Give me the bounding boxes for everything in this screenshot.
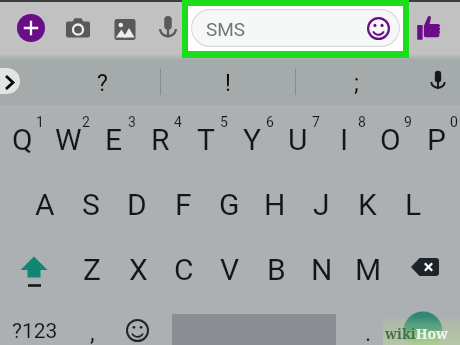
button[interactable]: ! <box>203 64 253 102</box>
staticText: 9 <box>404 114 412 130</box>
staticText: M <box>355 252 382 287</box>
button[interactable]: H <box>252 179 298 229</box>
button[interactable]: I <box>321 114 367 164</box>
button[interactable]: Voice message <box>154 14 182 42</box>
staticText: ?123 <box>12 319 58 344</box>
staticText: F <box>175 187 192 222</box>
staticText: 0 <box>450 114 458 130</box>
staticText: ! <box>225 70 231 97</box>
staticText: SMS <box>206 18 246 40</box>
staticText: 3 <box>128 114 136 130</box>
staticText: P <box>427 122 446 157</box>
button[interactable]: Camera <box>64 14 92 42</box>
button[interactable]: Shift <box>12 250 56 294</box>
button[interactable]: Q <box>0 114 45 164</box>
button[interactable]: ? <box>77 64 127 102</box>
button[interactable]: More suggestions <box>0 68 20 94</box>
button[interactable]: J <box>298 179 344 229</box>
button[interactable]: C <box>161 244 207 294</box>
button[interactable]: U <box>275 114 321 164</box>
button[interactable]: N <box>299 244 345 294</box>
button[interactable]: Send thumbs up <box>417 15 442 40</box>
staticText: U <box>288 122 308 157</box>
staticText: V <box>220 252 240 287</box>
staticText: O <box>380 122 401 157</box>
button[interactable]: P <box>413 114 459 164</box>
staticText: H <box>264 187 286 222</box>
button[interactable]: V <box>207 244 253 294</box>
staticText: N <box>311 252 333 287</box>
button[interactable]: R <box>137 114 183 164</box>
staticText: 1 <box>36 114 44 130</box>
staticText: K <box>358 187 377 222</box>
button[interactable]: Y <box>229 114 275 164</box>
staticText: , <box>90 319 95 345</box>
staticText: 2 <box>82 114 90 130</box>
staticText: X <box>129 252 148 287</box>
staticText: D <box>127 187 147 222</box>
staticText: 6 <box>266 114 274 130</box>
button[interactable]: Emoji keyboard <box>126 319 149 342</box>
button[interactable]: SMS <box>191 9 400 47</box>
button[interactable]: X <box>115 244 161 294</box>
staticText: R <box>151 122 170 157</box>
staticText: ? <box>97 70 108 97</box>
staticText: W <box>55 122 82 157</box>
button[interactable]: Emoji <box>367 17 390 40</box>
staticText: Q <box>12 122 33 157</box>
staticText: Z <box>83 252 101 287</box>
staticText: L <box>405 187 422 222</box>
button[interactable]: L <box>390 179 436 229</box>
button[interactable]: W <box>45 114 91 164</box>
staticText: Y <box>243 122 262 157</box>
button[interactable]: ?123 <box>6 311 64 345</box>
staticText: . <box>365 319 372 345</box>
button[interactable]: T <box>183 114 229 164</box>
staticText: wiki <box>385 324 416 343</box>
staticText: 8 <box>358 114 366 130</box>
button[interactable]: G <box>206 179 252 229</box>
staticText: 4 <box>174 114 182 130</box>
button[interactable]: F <box>160 179 206 229</box>
button[interactable]: Voice typing <box>425 68 451 94</box>
staticText: E <box>105 122 123 157</box>
staticText: G <box>219 187 240 222</box>
button[interactable]: Backspace <box>403 246 447 290</box>
button[interactable]: S <box>68 179 114 229</box>
button[interactable]: O <box>367 114 413 164</box>
staticText: ; <box>354 70 359 97</box>
button[interactable]: E <box>91 114 137 164</box>
staticText: 7 <box>312 114 320 130</box>
staticText: B <box>267 252 286 287</box>
button[interactable]: Gallery <box>111 14 139 42</box>
button[interactable]: D <box>114 179 160 229</box>
button[interactable]: Add attachment <box>17 14 45 42</box>
button[interactable]: B <box>253 244 299 294</box>
button[interactable]: Z <box>69 244 115 294</box>
button[interactable]: K <box>344 179 390 229</box>
staticText: I <box>340 122 349 157</box>
staticText: T <box>197 122 215 157</box>
button[interactable]: ; <box>331 64 381 102</box>
staticText: S <box>82 187 100 222</box>
button[interactable]: . <box>352 318 384 345</box>
staticText: C <box>174 252 194 287</box>
staticText: 5 <box>220 114 228 130</box>
button[interactable]: A <box>22 179 68 229</box>
button[interactable]: M <box>345 244 391 294</box>
staticText: A <box>35 187 55 222</box>
staticText: How <box>416 324 449 343</box>
button[interactable]: , <box>76 313 108 345</box>
staticText: J <box>313 187 330 222</box>
